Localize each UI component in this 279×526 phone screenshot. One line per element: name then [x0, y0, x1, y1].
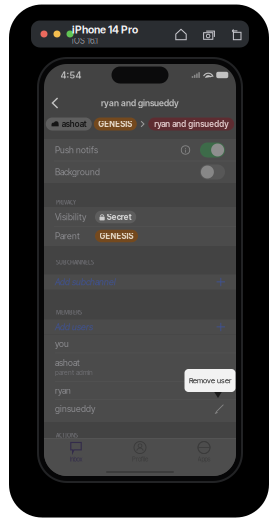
button[interactable]: ashoat — [46, 117, 92, 130]
button[interactable]: ryan and ginsueddy — [148, 117, 234, 130]
button[interactable]: Add users — [44, 319, 236, 334]
staticText: Parent — [55, 231, 80, 241]
staticText: iOS 16.1 — [72, 36, 98, 46]
staticText: MEMBERS — [56, 307, 82, 317]
button[interactable]: Rotate — [228, 25, 246, 43]
staticText: ginsueddy — [55, 403, 95, 414]
staticText: ryan and ginsueddy — [154, 119, 228, 129]
staticText: ashoat — [55, 358, 80, 368]
staticText: ryan — [55, 385, 71, 396]
staticText: Push notifs — [55, 145, 98, 155]
button[interactable]: Profile — [108, 438, 172, 466]
staticText: SUBCHANNELS — [56, 257, 94, 267]
staticText: GENESIS — [98, 119, 132, 129]
staticText: Add subchannel — [55, 277, 116, 287]
button[interactable]: Inbox — [44, 438, 108, 466]
staticText: parent admin — [55, 369, 93, 377]
button[interactable]: Home — [172, 25, 190, 43]
staticText: GENESIS — [99, 231, 133, 241]
staticText: Add users — [55, 322, 93, 332]
staticText: ryan and ginsueddy — [101, 98, 179, 108]
staticText: Background — [55, 167, 100, 177]
button[interactable]: Apps — [172, 438, 236, 466]
button[interactable]: Add subchannel — [44, 274, 236, 289]
staticText: iPhone 14 Pro — [72, 23, 138, 36]
staticText: Inbox — [69, 455, 82, 463]
button[interactable]: Back — [47, 94, 63, 112]
staticText: Remove user — [189, 376, 231, 385]
staticText: PRIVACY — [56, 197, 76, 207]
staticText: ACTIONS — [56, 430, 78, 440]
staticText: Apps — [197, 455, 210, 463]
staticText: Secret — [107, 212, 132, 222]
button[interactable]: GENESIS — [94, 117, 137, 130]
staticText: Profile — [132, 455, 148, 463]
staticText: Visibility — [55, 212, 86, 222]
button[interactable]: Screenshot — [200, 25, 218, 43]
staticText: 4:54 — [60, 69, 81, 81]
staticText: ashoat — [62, 119, 87, 129]
staticText: you — [55, 339, 69, 349]
